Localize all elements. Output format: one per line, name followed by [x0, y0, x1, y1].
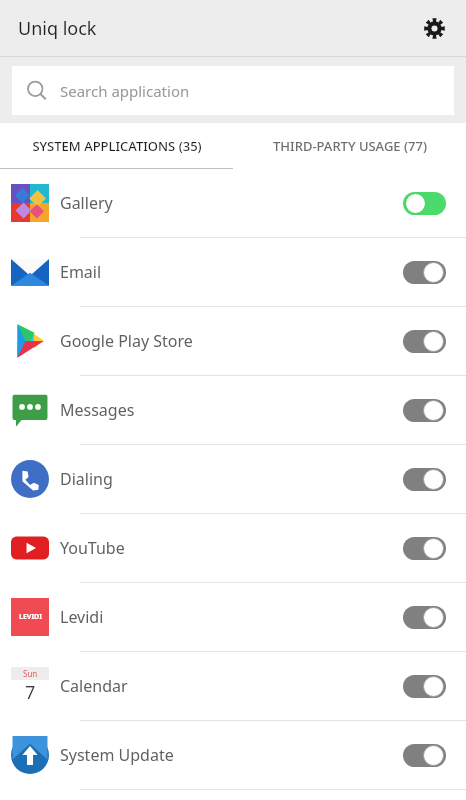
button[interactable]: Gallery — [0, 169, 466, 237]
staticText: LEVIDI — [19, 612, 42, 622]
button[interactable]: Dialing — [0, 445, 466, 513]
staticText: System Update — [60, 744, 403, 766]
button[interactable] — [403, 330, 446, 353]
staticText: 7 — [25, 680, 36, 705]
button[interactable] — [403, 261, 446, 284]
staticText: SYSTEM APPLICATIONS (35) — [32, 137, 202, 155]
button[interactable]: Sun — [0, 652, 466, 720]
button[interactable]: SYSTEM APPLICATIONS (35) — [0, 123, 233, 169]
button[interactable]: Messages — [0, 376, 466, 444]
staticText: Uniq lock — [18, 16, 97, 41]
button[interactable]: System Update — [0, 721, 466, 789]
staticText: Gallery — [60, 192, 403, 214]
button[interactable] — [403, 192, 446, 215]
button[interactable]: THIRD-PARTY USAGE (77) — [233, 123, 466, 169]
staticText: Messages — [60, 399, 403, 421]
staticText: Dialing — [60, 468, 403, 490]
staticText: Sun — [23, 668, 38, 679]
staticText: THIRD-PARTY USAGE (77) — [273, 137, 427, 155]
button[interactable] — [403, 675, 446, 698]
staticText: Email — [60, 261, 403, 283]
staticText: Search application — [60, 81, 190, 101]
staticText: Google Play Store — [60, 330, 403, 352]
button[interactable] — [403, 399, 446, 422]
button[interactable]: YouTube — [0, 514, 466, 582]
button[interactable]: Email — [0, 238, 466, 306]
button[interactable] — [403, 468, 446, 491]
button[interactable]: Google Play Store — [0, 307, 466, 375]
staticText: Calendar — [60, 675, 403, 697]
button[interactable] — [403, 537, 446, 560]
button[interactable]: LEVIDI — [0, 583, 466, 651]
button[interactable] — [403, 606, 446, 629]
button[interactable]: Settings — [414, 8, 454, 48]
button[interactable] — [403, 744, 446, 767]
staticText: Levidi — [60, 606, 403, 628]
button[interactable]: Search application — [12, 66, 454, 115]
staticText: YouTube — [60, 537, 403, 559]
